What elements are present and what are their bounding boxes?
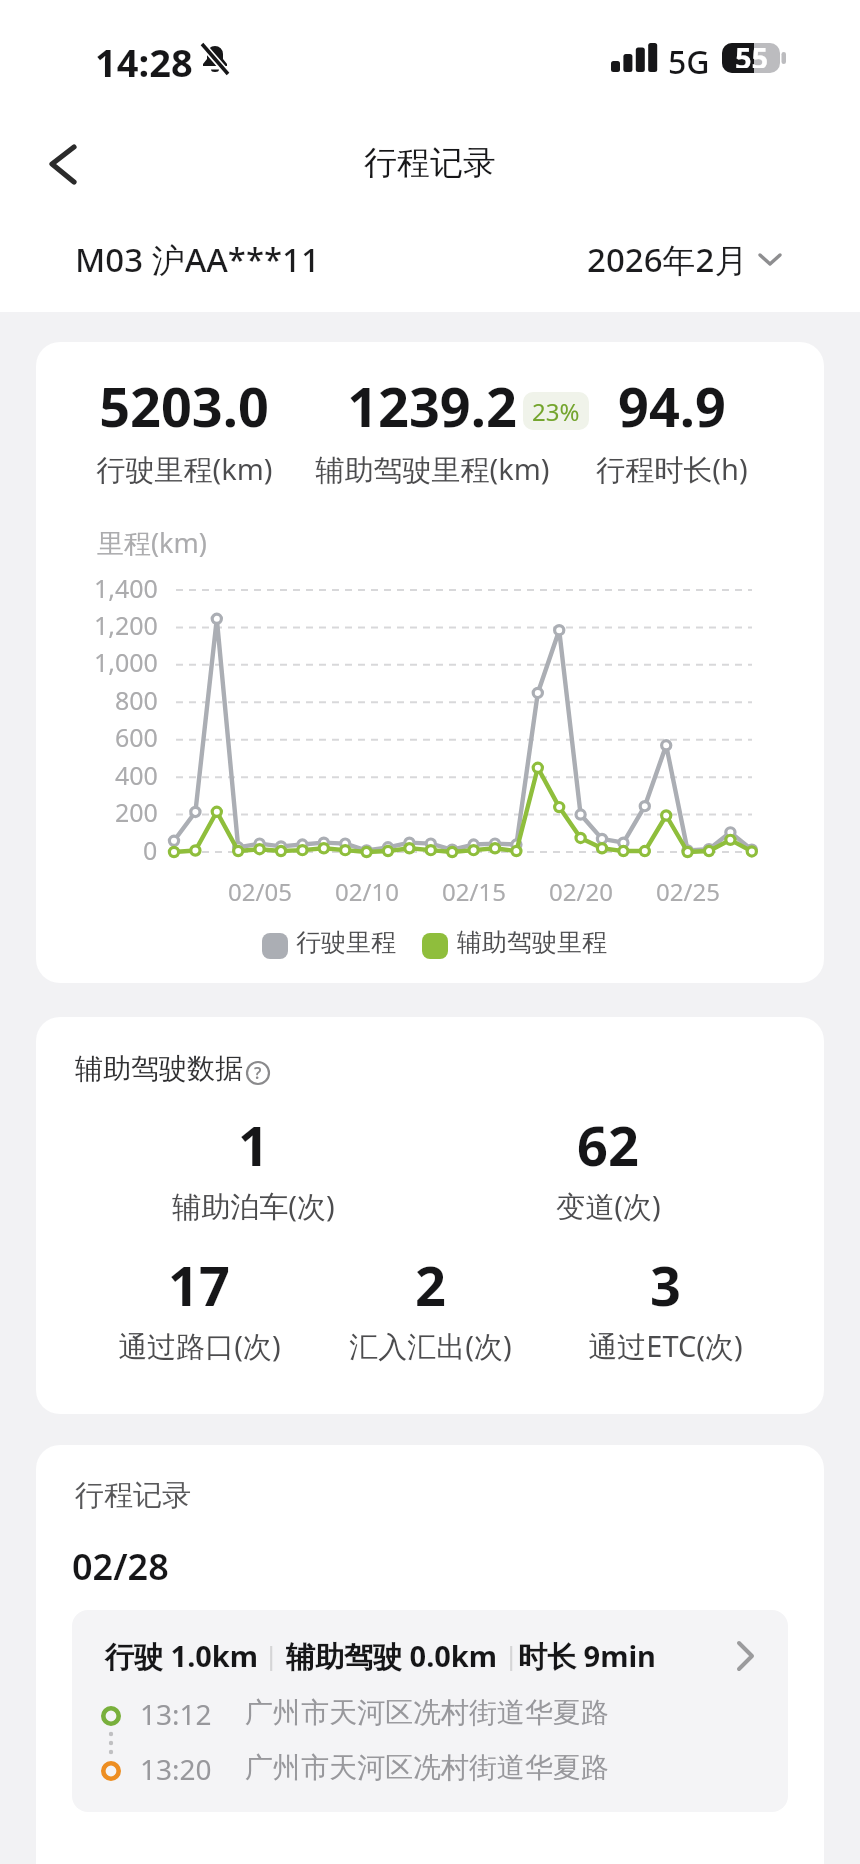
staticText: 13:20 (140, 1750, 212, 1788)
staticText: 里程(km) (97, 524, 207, 561)
staticText: 行程时长(h) (596, 449, 748, 489)
staticText: 23% (532, 395, 580, 428)
staticText: 变道(次) (556, 1186, 661, 1226)
staticText: 广州市天河区冼村街道华夏路 (245, 1750, 609, 1785)
staticText: 800 (115, 683, 158, 717)
staticText: 广州市天河区冼村街道华夏路 (245, 1695, 609, 1730)
staticText: 02/10 (335, 875, 399, 908)
staticText: 1,000 (94, 645, 158, 679)
staticText: 14:28 (95, 36, 193, 88)
staticText: 1239.2 (347, 369, 517, 443)
staticText: 600 (115, 720, 158, 754)
staticText: ? (254, 1062, 262, 1084)
staticText: 02/15 (442, 875, 506, 908)
staticText: 辅助驾驶里程 (457, 927, 607, 958)
staticText: 400 (115, 758, 158, 792)
staticText: 1 (238, 1108, 269, 1182)
staticText: 13:12 (140, 1695, 212, 1733)
staticText: 辅助驾驶 0.0km (286, 1636, 498, 1676)
staticText: 02/28 (72, 1542, 169, 1591)
staticText: 行驶 1.0km (105, 1636, 259, 1676)
staticText: | (264, 1637, 279, 1672)
staticText: | (504, 1637, 519, 1672)
staticText: 通过ETC(次) (588, 1326, 743, 1366)
staticText: 通过路口(次) (118, 1326, 281, 1366)
staticText: 行驶里程 (296, 927, 396, 958)
staticText: 2 (415, 1248, 446, 1322)
button[interactable] (36, 132, 96, 196)
staticText: 200 (115, 795, 158, 829)
staticText: 行程记录 (75, 1477, 191, 1514)
staticText: 辅助驾驶里程(km) (315, 449, 550, 489)
staticText: 辅助泊车(次) (172, 1186, 335, 1226)
staticText: 辅助驾驶数据 (75, 1051, 243, 1086)
staticText: 5G (668, 40, 710, 84)
staticText: 时长 9min (518, 1636, 656, 1676)
staticText: 2026年2月 (587, 237, 748, 282)
staticText: 行程记录 (364, 142, 496, 184)
staticText: 行驶里程(km) (96, 449, 273, 489)
staticText: 汇入汇出(次) (349, 1326, 512, 1366)
staticText: 1,400 (94, 571, 158, 605)
button[interactable]: 行驶 1.0km (72, 1610, 788, 1812)
staticText: 02/20 (549, 875, 613, 908)
staticText: 17 (168, 1248, 230, 1322)
staticText: 94.9 (618, 369, 726, 443)
staticText: 1,200 (94, 608, 158, 642)
staticText: M03 沪AA***11 (75, 237, 320, 282)
staticText: 02/05 (228, 875, 292, 908)
staticText: 0 (143, 833, 158, 867)
button[interactable]: 2026年2月 (0, 237, 782, 282)
staticText: 55 (735, 38, 769, 68)
staticText: 02/25 (656, 875, 720, 908)
staticText: 62 (577, 1108, 639, 1182)
staticText: 3 (650, 1248, 681, 1322)
staticText: 5203.0 (99, 369, 269, 443)
